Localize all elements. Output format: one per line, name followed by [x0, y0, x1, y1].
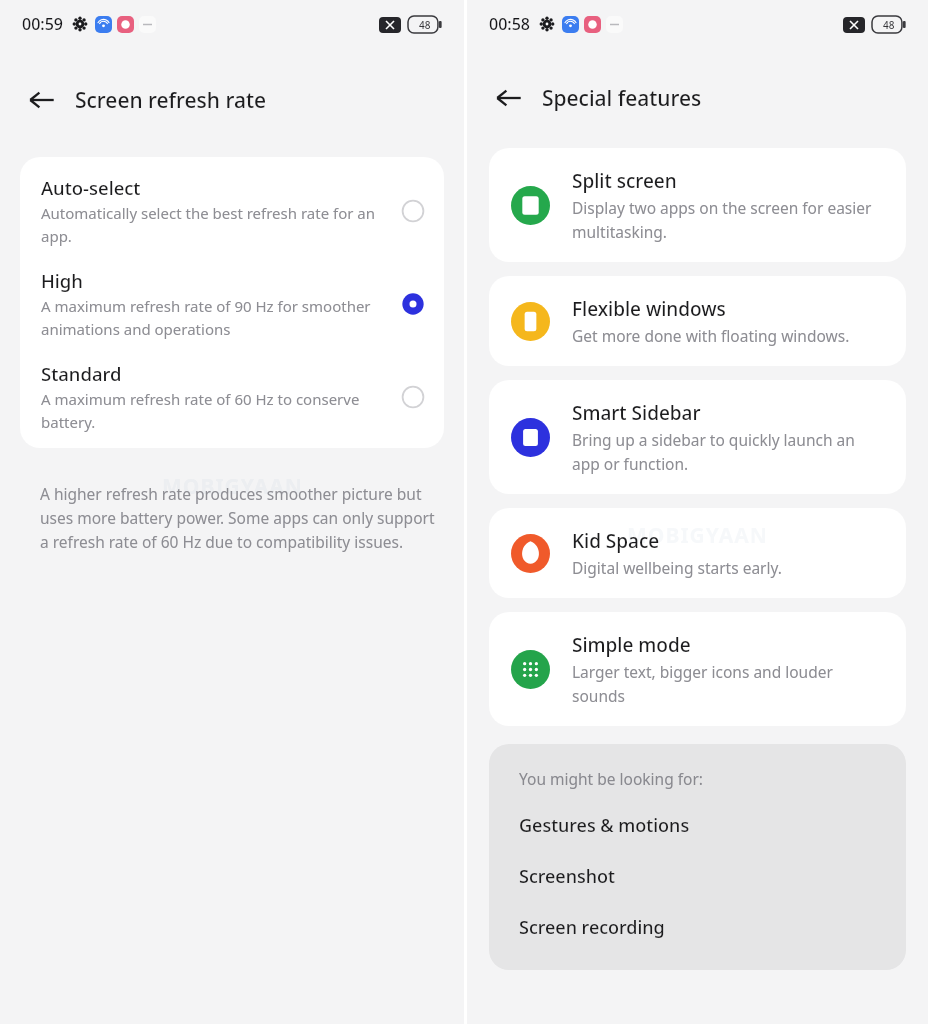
staticText: Screen refresh rate [75, 86, 266, 115]
button[interactable]: Flexible windows [489, 276, 906, 366]
staticText: Screenshot [519, 864, 615, 889]
staticText: Kid Space [572, 528, 660, 554]
staticText: Gestures & motions [519, 813, 690, 838]
staticText: 48 [883, 18, 895, 32]
staticText: Split screen [572, 168, 677, 194]
button[interactable]: Standard [20, 343, 444, 436]
staticText: A maximum refresh rate of 60 Hz to conse… [41, 389, 386, 432]
staticText: Digital wellbeing starts early. [572, 557, 782, 578]
staticText: Get more done with floating windows. [572, 325, 850, 346]
staticText: Simple mode [572, 632, 691, 658]
button[interactable]: Screen recording [519, 915, 886, 940]
staticText: 00:58 [489, 13, 530, 35]
staticText: Smart Sidebar [572, 400, 701, 426]
staticText: A higher refresh rate produces smoother … [40, 483, 442, 552]
button[interactable]: Screenshot [519, 864, 886, 889]
button[interactable]: Simple mode [489, 612, 906, 726]
staticText: Standard [41, 361, 122, 386]
button[interactable]: MOBIGYAAN [489, 508, 906, 598]
staticText: Auto-select [41, 175, 141, 200]
staticText: MOBIGYAAN [627, 521, 768, 550]
staticText: MOBIGYAAN [162, 472, 303, 501]
button[interactable]: Smart Sidebar [489, 380, 906, 494]
staticText: 00:59 [22, 13, 63, 35]
button[interactable]: Split screen [489, 148, 906, 262]
staticText: Larger text, bigger icons and louder sou… [572, 661, 886, 706]
staticText: Display two apps on the screen for easie… [572, 197, 886, 242]
button[interactable]: Back [22, 80, 62, 120]
staticText: You might be looking for: [519, 768, 703, 789]
staticText: Automatically select the best refresh ra… [41, 203, 386, 246]
button[interactable]: Back [489, 78, 529, 118]
button[interactable]: Gestures & motions [519, 813, 886, 838]
button[interactable]: High [20, 250, 444, 343]
staticText: Screen recording [519, 915, 665, 940]
button[interactable]: Auto-select [20, 157, 444, 250]
staticText: 48 [419, 18, 431, 32]
staticText: Bring up a sidebar to quickly launch an … [572, 429, 886, 474]
staticText: A maximum refresh rate of 90 Hz for smoo… [41, 296, 386, 339]
staticText: High [41, 268, 83, 293]
staticText: Flexible windows [572, 296, 726, 322]
staticText: Special features [542, 84, 702, 113]
